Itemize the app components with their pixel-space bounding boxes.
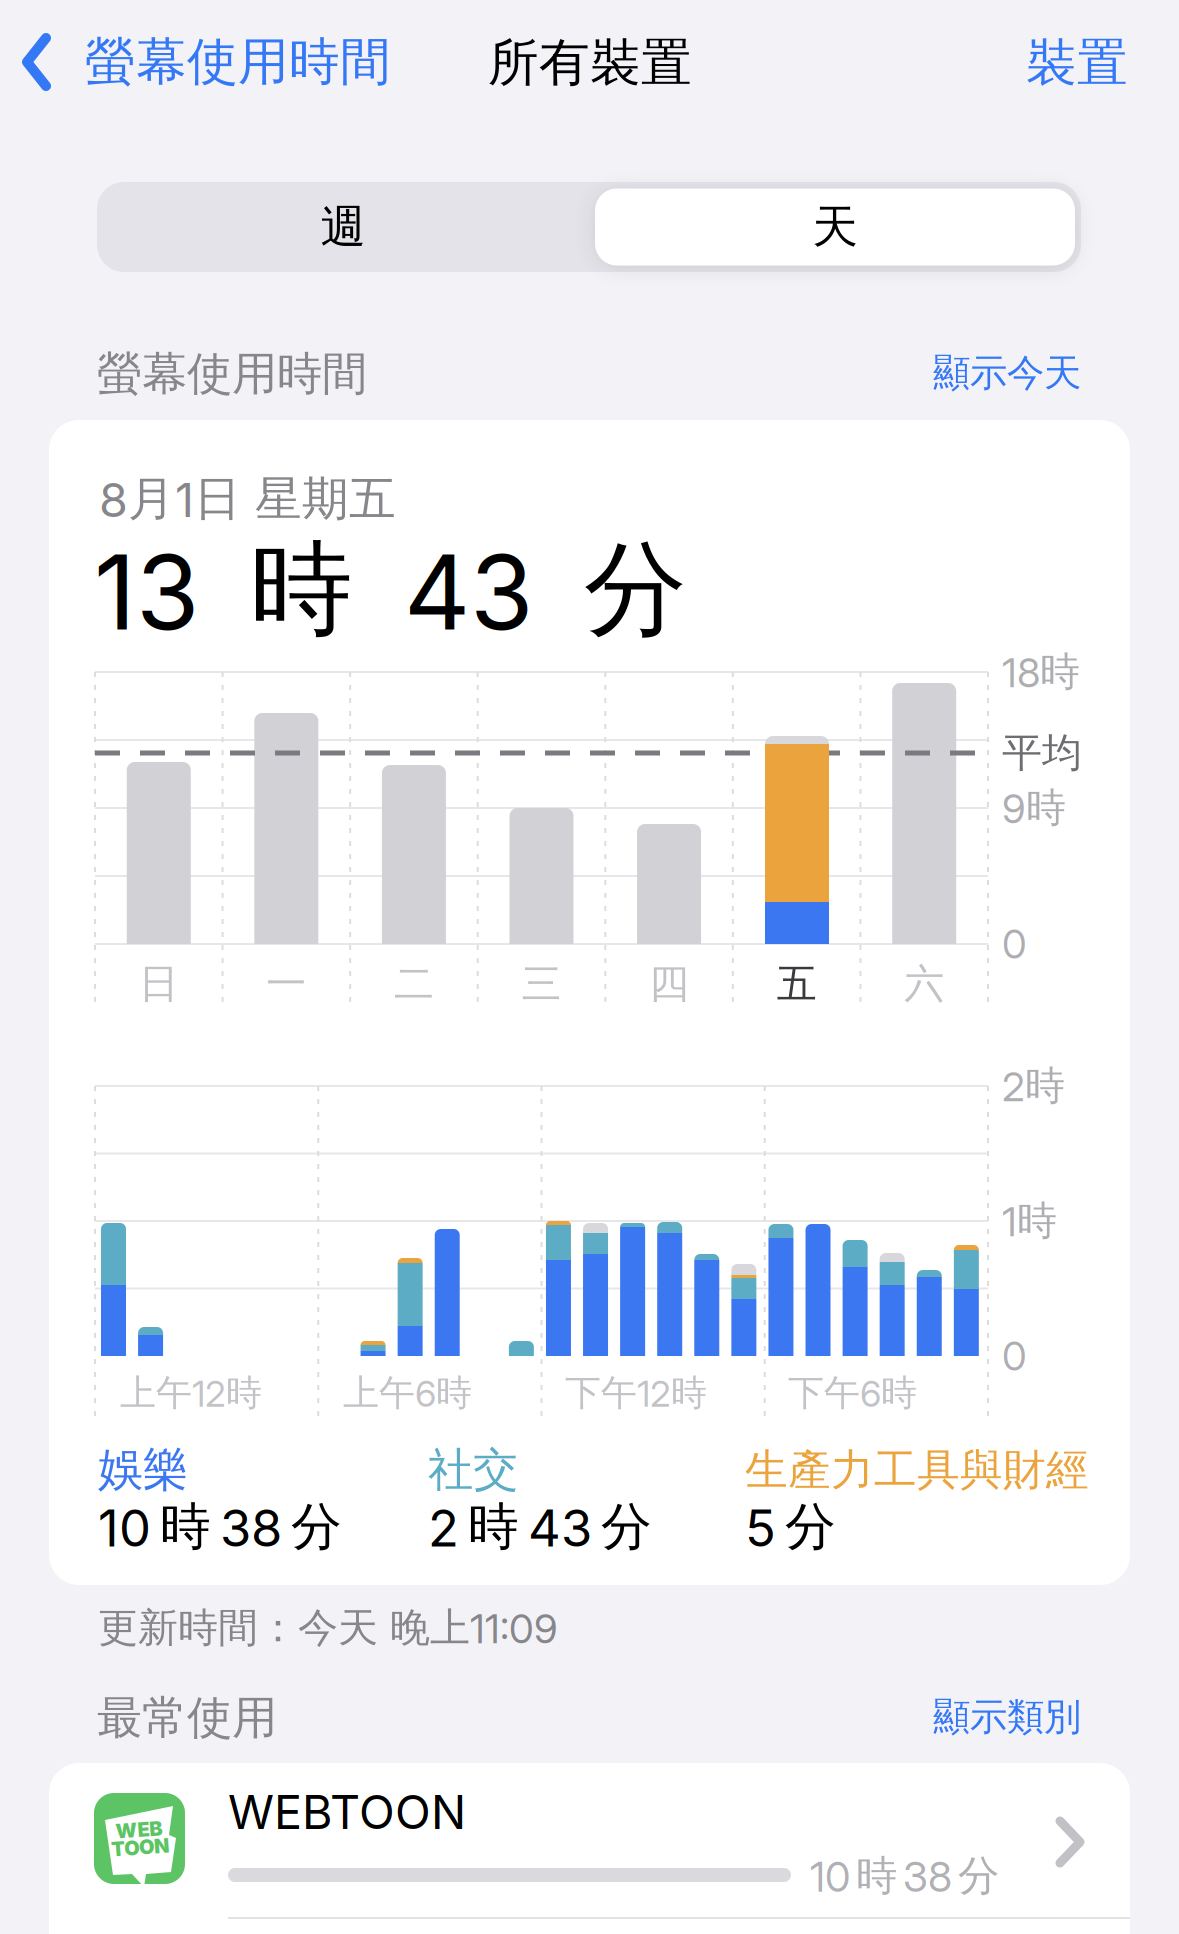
button[interactable]: 顯示今天 [933, 350, 1081, 396]
staticText: 娛樂 [98, 1442, 188, 1498]
staticText: 社交 [428, 1442, 518, 1498]
staticText: 上午6時 [343, 1371, 472, 1415]
button[interactable]: 天 [589, 182, 1081, 272]
staticText: 日 [139, 959, 179, 1008]
staticText: 10 時 38 分 [810, 1851, 999, 1901]
button[interactable]: 顯示類別 [933, 1694, 1081, 1740]
staticText: 9時 [1002, 783, 1066, 832]
staticText: 顯示類別 [933, 1694, 1081, 1740]
staticText: 0 [1002, 920, 1027, 968]
staticText: 更新時間：今天 晚上11:09 [98, 1603, 558, 1652]
staticText: 三 [521, 959, 561, 1008]
button[interactable]: 螢幕使用時間 [25, 31, 391, 93]
staticText: 五 [777, 959, 817, 1008]
button[interactable]: 裝置 [1026, 32, 1128, 94]
staticText: 下午12時 [565, 1371, 707, 1415]
staticText: 0 [1002, 1332, 1027, 1380]
button[interactable]: WEB [49, 1763, 1130, 1923]
staticText: 13 時 43 分 [94, 527, 687, 653]
staticText: 8月1日 星期五 [99, 470, 396, 528]
staticText: 最常使用 [97, 1690, 277, 1746]
staticText: 平均 [1002, 728, 1082, 777]
staticText: 週 [320, 199, 365, 255]
staticText: 二 [394, 959, 434, 1008]
staticText: 5 分 [745, 1496, 836, 1558]
staticText: 天 [812, 199, 857, 255]
staticText: WEBTOON [228, 1784, 466, 1840]
staticText: 一 [266, 959, 306, 1008]
staticText: 裝置 [1026, 32, 1128, 94]
staticText: 下午6時 [788, 1371, 917, 1415]
staticText: 2 時 43 分 [428, 1496, 652, 1558]
staticText: 上午12時 [120, 1371, 262, 1415]
staticText: 1時 [1002, 1196, 1057, 1245]
staticText: 螢幕使用時間 [85, 31, 391, 93]
staticText: 生產力工具與財經 [745, 1444, 1089, 1496]
staticText: 六 [904, 959, 944, 1008]
staticText: 18時 [1002, 647, 1080, 696]
staticText: 2時 [1002, 1061, 1065, 1110]
staticText: WEB [116, 1818, 163, 1841]
staticText: 所有裝置 [488, 32, 692, 94]
staticText: 10 時 38 分 [98, 1496, 342, 1558]
button[interactable]: 週 [97, 182, 589, 272]
staticText: 四 [649, 959, 689, 1008]
staticText: 螢幕使用時間 [97, 346, 367, 402]
staticText: TOON [110, 1835, 168, 1859]
staticText: 顯示今天 [933, 350, 1081, 396]
